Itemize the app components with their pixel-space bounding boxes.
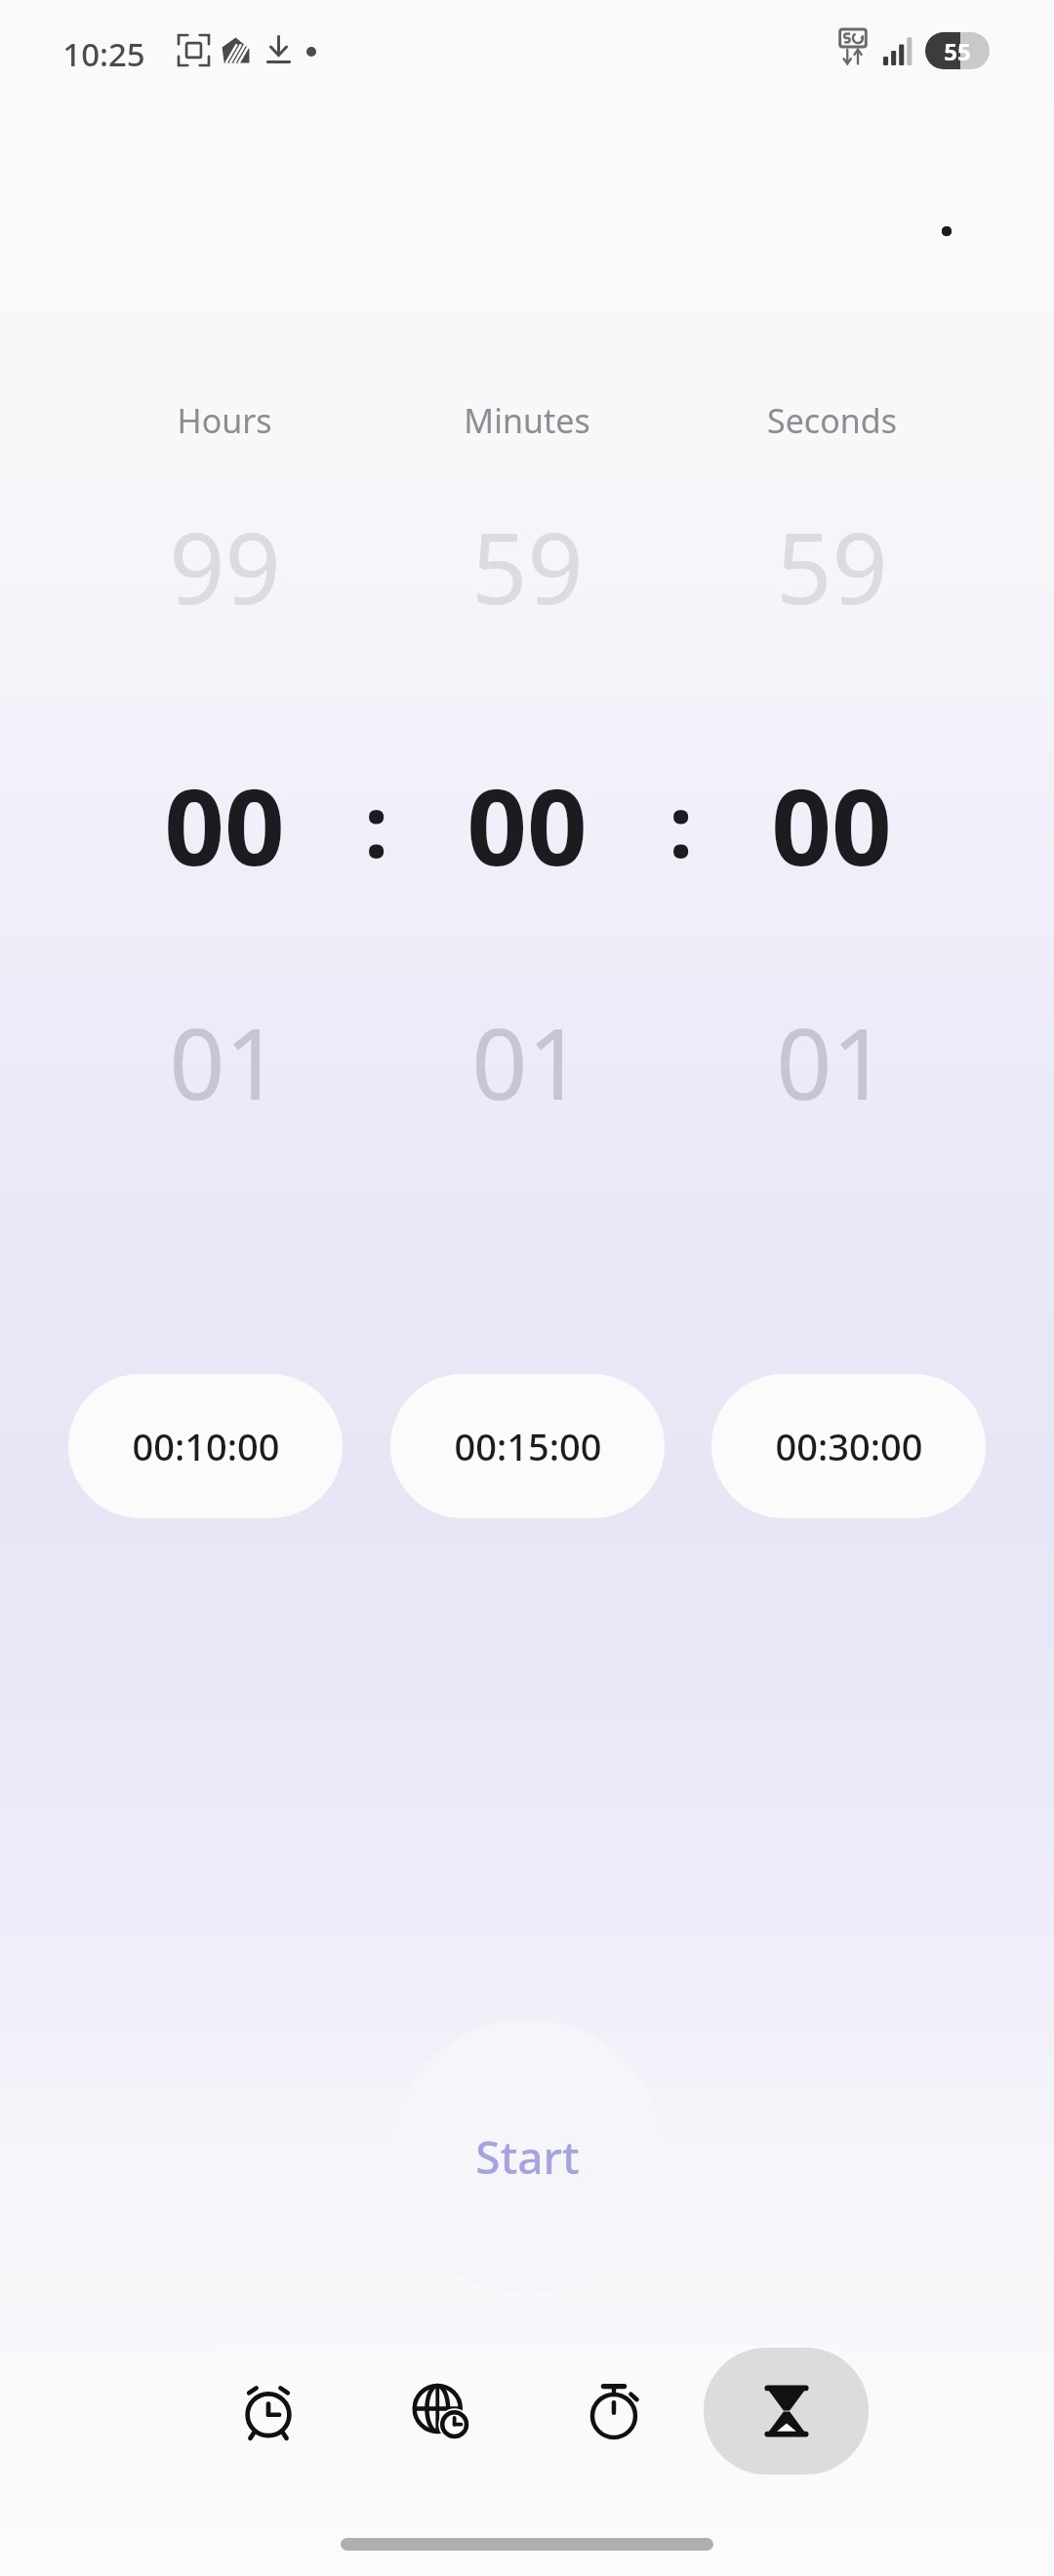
button[interactable]: World clock xyxy=(358,2348,523,2475)
button[interactable]: 59 xyxy=(685,500,978,626)
staticText: Minutes xyxy=(464,398,590,443)
staticText: 59 xyxy=(471,500,584,626)
staticText: 00 xyxy=(771,753,892,897)
button[interactable]: 00:30:00 xyxy=(711,1374,986,1518)
button[interactable]: 00:15:00 xyxy=(390,1374,665,1518)
button[interactable]: 00:10:00 xyxy=(68,1374,343,1518)
staticText: 00 xyxy=(466,753,588,897)
button[interactable]: 00 xyxy=(685,751,978,898)
staticText: Seconds xyxy=(767,398,897,443)
staticText: 00:10:00 xyxy=(132,1421,280,1471)
button[interactable]: 00 xyxy=(381,751,673,898)
staticText: 99 xyxy=(169,500,281,626)
button[interactable]: 01 xyxy=(78,995,371,1122)
button[interactable]: 99 xyxy=(78,500,371,626)
staticText: Hours xyxy=(177,398,272,443)
button[interactable]: Timer xyxy=(704,2348,869,2475)
staticText: 00:15:00 xyxy=(454,1421,602,1471)
staticText: 59 xyxy=(776,500,888,626)
staticText: : xyxy=(669,766,693,883)
button[interactable]: 01 xyxy=(685,995,978,1122)
button[interactable]: 59 xyxy=(381,500,673,626)
button[interactable]: Alarm xyxy=(185,2348,350,2475)
staticText: 01 xyxy=(169,995,281,1122)
staticText: : xyxy=(364,766,388,883)
staticText: 10:25 xyxy=(62,32,145,76)
button[interactable]: 01 xyxy=(381,995,673,1122)
staticText: 55 xyxy=(944,35,971,67)
button[interactable]: More options xyxy=(898,182,995,280)
staticText: 01 xyxy=(471,995,584,1122)
staticText: 01 xyxy=(776,995,888,1122)
staticText: Start xyxy=(475,2126,580,2188)
staticText: 00 xyxy=(164,753,285,897)
button[interactable]: Start xyxy=(390,2020,665,2294)
button[interactable]: 00 xyxy=(78,751,371,898)
button[interactable]: Stopwatch xyxy=(531,2348,696,2475)
staticText: 00:30:00 xyxy=(775,1421,923,1471)
